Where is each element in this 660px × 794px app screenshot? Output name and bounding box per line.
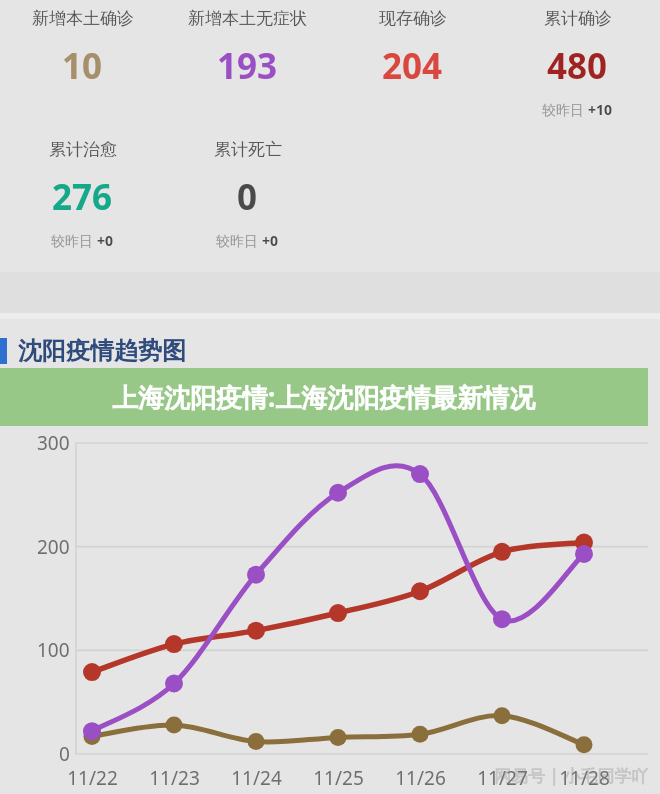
button[interactable]: 累计死亡 (165, 139, 330, 250)
staticText: 11/25 (313, 765, 364, 791)
staticText: 新增本土无症状 (350, 404, 448, 422)
staticText: 累计死亡 (214, 139, 282, 160)
staticText: 11/24 (231, 765, 282, 791)
button[interactable]: 新增本土确诊 (0, 8, 165, 90)
staticText: 100 (37, 637, 70, 663)
staticText: 0 (59, 741, 70, 767)
staticText: 11/23 (149, 765, 200, 791)
staticText: 网易号 | 小毛同学吖 (494, 764, 649, 787)
staticText: 累计治愈 (49, 139, 117, 160)
button[interactable]: 新增本土无症状 (165, 8, 330, 90)
staticText: +10 (588, 100, 613, 119)
staticText: 11/22 (67, 765, 118, 791)
button[interactable]: 累计确诊 (495, 8, 660, 119)
staticText: 11/28 (559, 765, 610, 791)
staticText: 现存确诊 (497, 404, 553, 422)
staticText: +0 (97, 231, 114, 250)
staticText: 累计确诊 (544, 8, 612, 29)
button[interactable]: 累计治愈 (0, 139, 165, 250)
staticText: 480 (547, 42, 608, 90)
button[interactable]: 现存确诊 (476, 404, 553, 422)
staticText: 上海沈阳疫情:上海沈阳疫情最新情况 (112, 379, 536, 415)
staticText: 0 (237, 173, 258, 221)
staticText: 人数 (14, 408, 44, 427)
button[interactable]: 现存确诊 (330, 8, 495, 90)
staticText: 新增本土无症状 (188, 8, 307, 29)
staticText: 较昨日 (542, 100, 588, 119)
staticText: 现存确诊 (379, 8, 447, 29)
staticText: 204 (382, 42, 443, 90)
staticText: 沈阳疫情趋势图 (18, 336, 186, 366)
staticText: 新增本土确诊 (32, 8, 134, 29)
staticText: 276 (52, 173, 113, 221)
button[interactable]: 沈阳疫情趋势图 (0, 336, 186, 366)
staticText: 11/26 (395, 765, 446, 791)
staticText: 300 (37, 430, 70, 456)
staticText: 193 (217, 42, 278, 90)
staticText: 较昨日 (51, 231, 97, 250)
staticText: 较昨日 (216, 231, 262, 250)
staticText: 200 (37, 534, 70, 560)
staticText: 新增本土确诊 (217, 404, 301, 422)
staticText: 11/27 (477, 765, 528, 791)
button[interactable]: 新增本土无症状 (329, 404, 448, 422)
button[interactable]: 上海沈阳疫情:上海沈阳疫情最新情况 (0, 368, 648, 426)
staticText: 10 (62, 42, 103, 90)
staticText: +0 (262, 231, 279, 250)
button[interactable]: 新增本土确诊 (196, 404, 301, 422)
